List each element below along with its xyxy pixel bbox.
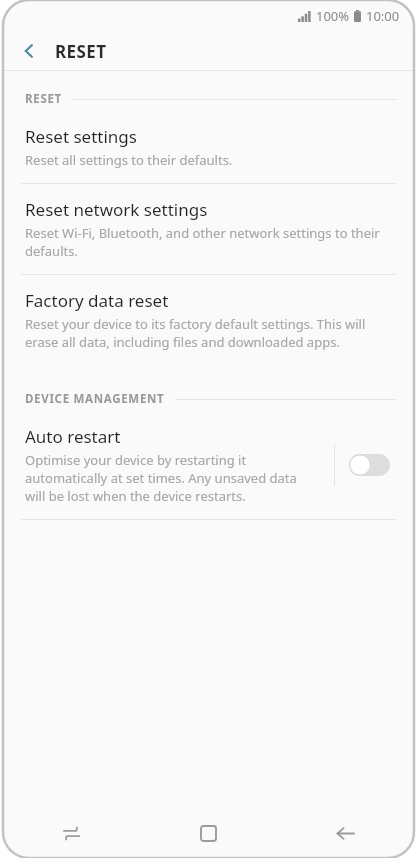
staticText: 100% <box>316 7 350 25</box>
staticText: Reset Wi-Fi, Bluetooth, and other networ… <box>25 224 392 260</box>
button[interactable]: Auto restart <box>3 411 414 519</box>
button[interactable]: Auto restart toggle <box>349 454 390 476</box>
staticText: 10:00 <box>366 7 400 25</box>
button[interactable]: Back <box>277 808 414 858</box>
staticText: Reset network settings <box>25 198 208 221</box>
button[interactable]: Factory data reset <box>3 275 414 365</box>
button[interactable]: Reset settings <box>3 111 414 183</box>
staticText: Auto restart <box>25 425 121 448</box>
staticText: Factory data reset <box>25 289 169 312</box>
staticText: Reset all settings to their defaults. <box>25 151 233 169</box>
button[interactable]: Back <box>3 32 55 70</box>
button[interactable]: Home <box>140 808 277 858</box>
staticText: Reset your device to its factory default… <box>25 315 392 351</box>
button[interactable]: Reset network settings <box>3 184 414 274</box>
button[interactable]: Recents <box>3 808 140 858</box>
staticText: Optimise your device by restarting it au… <box>25 451 315 505</box>
staticText: Reset settings <box>25 125 137 148</box>
staticText: DEVICE MANAGEMENT <box>25 391 165 407</box>
staticText: RESET <box>25 91 62 107</box>
staticText: RESET <box>55 40 107 63</box>
